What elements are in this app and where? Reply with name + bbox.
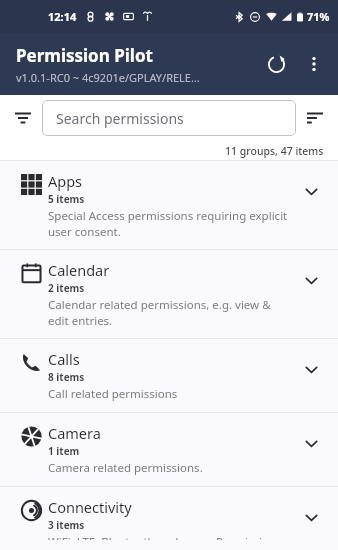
- staticText: Connectivity: [48, 497, 132, 517]
- staticText: v1.0.1-RC0 ~ 4c9201e/GPLAY/RELE…: [16, 70, 200, 85]
- staticText: Permission Pilot: [16, 44, 153, 67]
- staticText: 1 item: [48, 444, 80, 458]
- button[interactable]: Expand Calendar: [294, 266, 328, 294]
- button[interactable]: Connectivity: [0, 487, 338, 550]
- staticText: 8 items: [48, 370, 85, 384]
- button[interactable]: Expand Apps: [294, 177, 328, 205]
- staticText: Special Access permissions requiring exp…: [48, 208, 288, 239]
- staticText: 71%: [307, 9, 330, 24]
- staticText: WiFi, LTE, Bluetooth and more. Permissio…: [48, 534, 288, 540]
- staticText: Camera related permissions.: [48, 460, 203, 476]
- button[interactable]: More options: [296, 46, 332, 82]
- staticText: 3 items: [48, 518, 85, 532]
- staticText: Search permissions: [56, 109, 184, 128]
- staticText: 5 items: [48, 192, 85, 206]
- staticText: Calendar related permissions, e.g. view …: [48, 297, 288, 328]
- staticText: Calls: [48, 349, 80, 369]
- staticText: Call related permissions: [48, 386, 178, 402]
- button[interactable]: Expand Camera: [294, 429, 328, 457]
- button[interactable]: Search permissions: [42, 100, 296, 136]
- button[interactable]: Expand Connectivity: [294, 503, 328, 531]
- staticText: Apps: [48, 171, 83, 191]
- button[interactable]: Filter: [8, 103, 38, 133]
- button[interactable]: Refresh: [256, 44, 296, 84]
- staticText: Camera: [48, 423, 101, 443]
- staticText: 11 groups, 47 items: [225, 144, 324, 158]
- staticText: Calendar: [48, 260, 110, 280]
- button[interactable]: Calls: [0, 339, 338, 412]
- button[interactable]: Sort: [300, 103, 330, 133]
- button[interactable]: Apps: [0, 161, 338, 249]
- staticText: 2 items: [48, 281, 85, 295]
- button[interactable]: Camera: [0, 413, 338, 486]
- button[interactable]: Expand Calls: [294, 355, 328, 383]
- staticText: 12:14: [48, 9, 77, 24]
- button[interactable]: Calendar: [0, 250, 338, 338]
